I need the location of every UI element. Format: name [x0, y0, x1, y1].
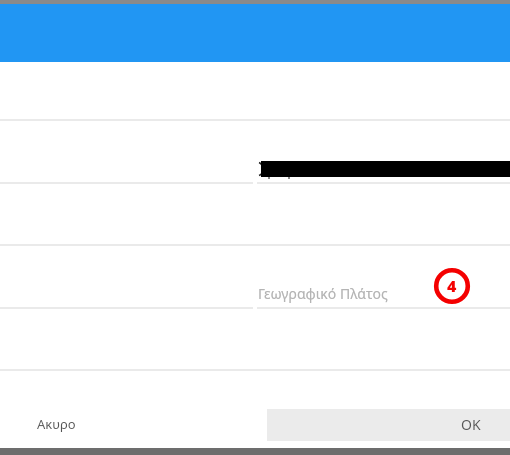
staticText: Ακυρο: [37, 415, 76, 433]
staticText: OK: [461, 415, 481, 434]
button[interactable]: Ακυρο: [18, 409, 92, 441]
other: Step 4 hint: [434, 268, 470, 304]
staticText: Γεωγραφικό Πλάτος: [258, 284, 388, 303]
button[interactable]: OK: [267, 409, 510, 441]
button[interactable]: Γεωγραφικό Πλάτος: [257, 256, 510, 307]
button[interactable]: [257, 131, 510, 182]
staticText: 4: [447, 275, 457, 297]
